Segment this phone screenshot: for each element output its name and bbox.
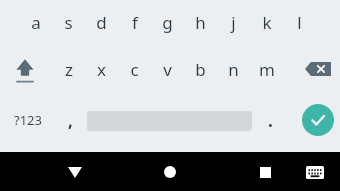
staticText: g [162, 11, 173, 34]
button[interactable]: Home [155, 161, 185, 183]
button[interactable]: n [217, 47, 250, 91]
staticText: x [97, 58, 106, 81]
staticText: z [65, 58, 73, 81]
button[interactable]: Shift [7, 48, 43, 90]
button[interactable]: s [52, 0, 85, 44]
staticText: h [195, 11, 206, 34]
staticText: d [96, 11, 107, 34]
button[interactable]: m [250, 47, 283, 91]
staticText: m [259, 58, 275, 81]
staticText: ?123 [14, 111, 42, 129]
button[interactable]: g [151, 0, 184, 44]
button[interactable]: c [118, 47, 151, 91]
button[interactable]: Recent apps [250, 161, 280, 183]
button[interactable]: v [151, 47, 184, 91]
staticText: j [231, 11, 236, 34]
staticText: b [195, 58, 206, 81]
button[interactable]: , [56, 100, 84, 140]
staticText: s [64, 11, 73, 34]
button[interactable]: b [184, 47, 217, 91]
staticText: a [31, 11, 41, 34]
button[interactable]: Enter [302, 104, 334, 136]
button[interactable]: l [283, 0, 316, 44]
button[interactable]: k [250, 0, 283, 44]
staticText: . [268, 109, 273, 132]
button[interactable]: j [217, 0, 250, 44]
staticText: n [228, 58, 239, 81]
staticText: f [132, 11, 138, 34]
button[interactable]: . [257, 100, 283, 140]
button[interactable]: Back [60, 161, 90, 183]
button[interactable]: f [118, 0, 151, 44]
button[interactable]: Switch keyboard [300, 161, 330, 183]
button[interactable]: Backspace [302, 54, 334, 84]
staticText: l [297, 11, 302, 34]
button[interactable]: ?123 [6, 100, 49, 140]
staticText: v [163, 58, 172, 81]
staticText: , [68, 109, 73, 132]
button[interactable]: a [19, 0, 52, 44]
button[interactable]: h [184, 0, 217, 44]
staticText: k [262, 11, 272, 34]
button[interactable]: x [85, 47, 118, 91]
staticText: c [130, 58, 139, 81]
button[interactable]: d [85, 0, 118, 44]
button[interactable]: z [52, 47, 85, 91]
